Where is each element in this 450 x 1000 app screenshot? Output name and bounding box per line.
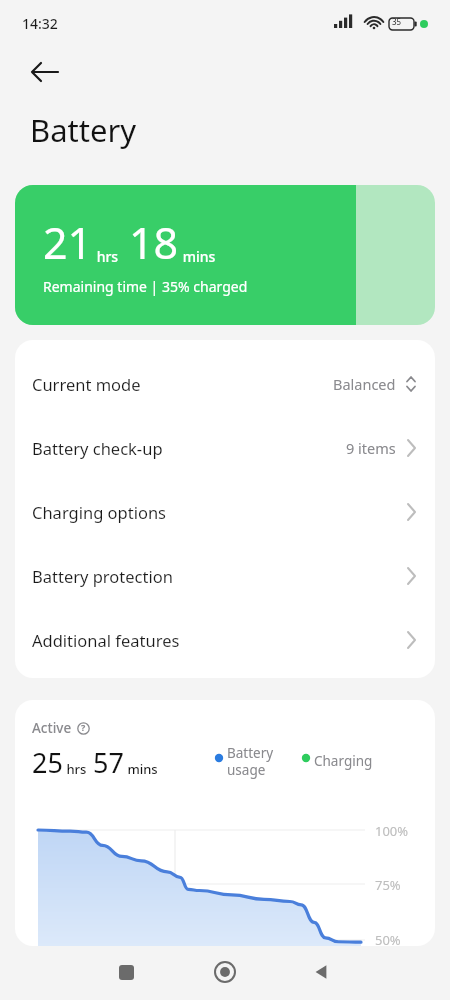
other: Help <box>77 722 90 735</box>
staticText: hrs <box>93 247 119 266</box>
staticText: 57 <box>93 744 124 781</box>
button[interactable]: Back <box>300 950 344 994</box>
staticText: Battery <box>30 109 137 151</box>
staticText: Battery protection <box>32 565 173 587</box>
staticText: Battery check-up <box>32 437 163 459</box>
staticText: ? <box>81 721 86 733</box>
staticText: 75% <box>375 876 401 894</box>
staticText: Charging options <box>32 501 166 523</box>
staticText: 9 items <box>346 438 396 458</box>
staticText: 18 <box>129 213 179 272</box>
button[interactable]: Home <box>203 950 247 994</box>
staticText: Current mode <box>32 373 141 395</box>
staticText: 50% <box>375 931 401 946</box>
staticText: Battery usage <box>227 744 274 779</box>
button[interactable]: Battery check-up <box>15 416 435 480</box>
button[interactable]: Additional features <box>15 608 435 672</box>
staticText: 21 <box>43 213 93 272</box>
button[interactable]: Charging options <box>15 480 435 544</box>
button[interactable]: Current mode <box>15 340 435 416</box>
staticText: Charging <box>314 752 373 770</box>
staticText: Active <box>32 719 72 737</box>
button[interactable]: Recents <box>104 950 148 994</box>
staticText: 25 <box>32 744 63 781</box>
staticText: Additional features <box>32 629 180 651</box>
button[interactable]: Battery protection <box>15 544 435 608</box>
staticText: hrs <box>63 760 87 778</box>
staticText: mins <box>124 760 158 778</box>
staticText: mins <box>179 247 216 266</box>
button[interactable]: Active <box>15 700 435 946</box>
staticText: 100% <box>375 822 409 840</box>
staticText: 14:32 <box>22 14 58 33</box>
staticText: Remaining time | 35% charged <box>43 277 248 296</box>
button[interactable]: 21 <box>15 185 435 325</box>
staticText: Balanced <box>333 374 396 394</box>
staticText: 35 <box>392 16 402 27</box>
button[interactable]: Back <box>24 50 68 94</box>
